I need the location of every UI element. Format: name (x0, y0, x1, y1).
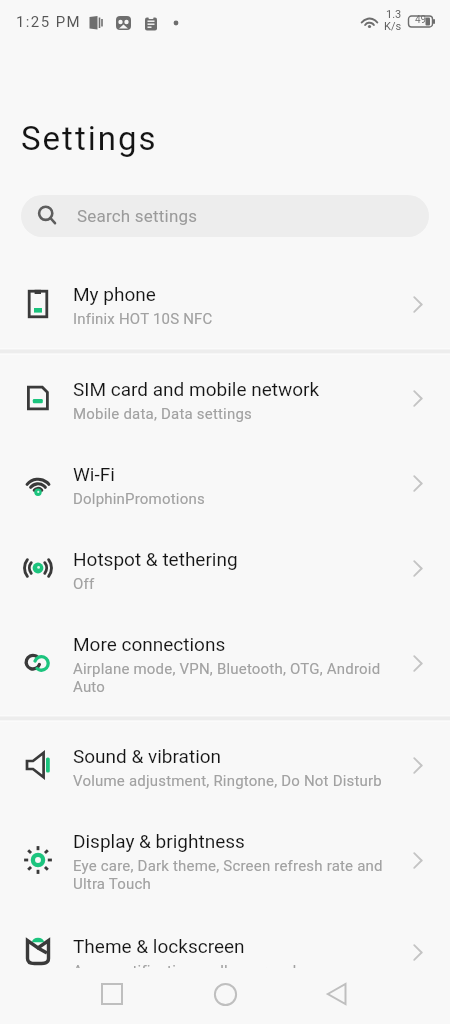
staticText: Mobile data, Data settings (73, 405, 252, 423)
button[interactable]: SIM card and mobile network (0, 355, 450, 440)
staticText: 1.3 (386, 8, 402, 21)
staticText: Settings (21, 119, 158, 158)
staticText: My phone (73, 283, 156, 305)
staticText: Eye care, Dark theme, Screen refresh rat… (73, 857, 385, 892)
staticText: Theme & lockscreen (73, 935, 245, 957)
button[interactable]: Theme & lockscreen (0, 912, 450, 992)
staticText: More connections (73, 633, 226, 655)
button[interactable]: Wi-Fi (0, 440, 450, 525)
button[interactable]: Back (313, 970, 361, 1018)
staticText: DolphinPromotions (73, 490, 205, 508)
button[interactable]: Hotspot & tethering (0, 525, 450, 610)
staticText: Volume adjustment, Ringtone, Do Not Dist… (73, 772, 382, 790)
staticText: Infinix HOT 10S NFC (73, 310, 213, 328)
staticText: 1:25 PM (16, 13, 82, 31)
button[interactable]: Display & brightness (0, 807, 450, 912)
staticText: Off (73, 575, 95, 593)
staticText: Airplane mode, VPN, Bluetooth, OTG, Andr… (73, 660, 385, 695)
staticText: Apps, notification, wallpaper and notifi… (73, 962, 385, 997)
button[interactable]: Search settings (21, 195, 429, 237)
button[interactable]: Sound & vibration (0, 722, 450, 807)
staticText: Search settings (77, 206, 198, 226)
staticText: Hotspot & tethering (73, 548, 238, 570)
button[interactable]: Recent apps (88, 970, 136, 1018)
button[interactable]: More connections (0, 610, 450, 715)
staticText: 49 (415, 14, 427, 26)
button[interactable]: My phone (0, 260, 450, 348)
staticText: Sound & vibration (73, 745, 222, 767)
staticText: Display & brightness (73, 830, 245, 852)
button[interactable]: Home (201, 970, 249, 1018)
staticText: SIM card and mobile network (73, 378, 320, 400)
staticText: Wi-Fi (73, 463, 115, 485)
staticText: K/s (384, 20, 402, 33)
